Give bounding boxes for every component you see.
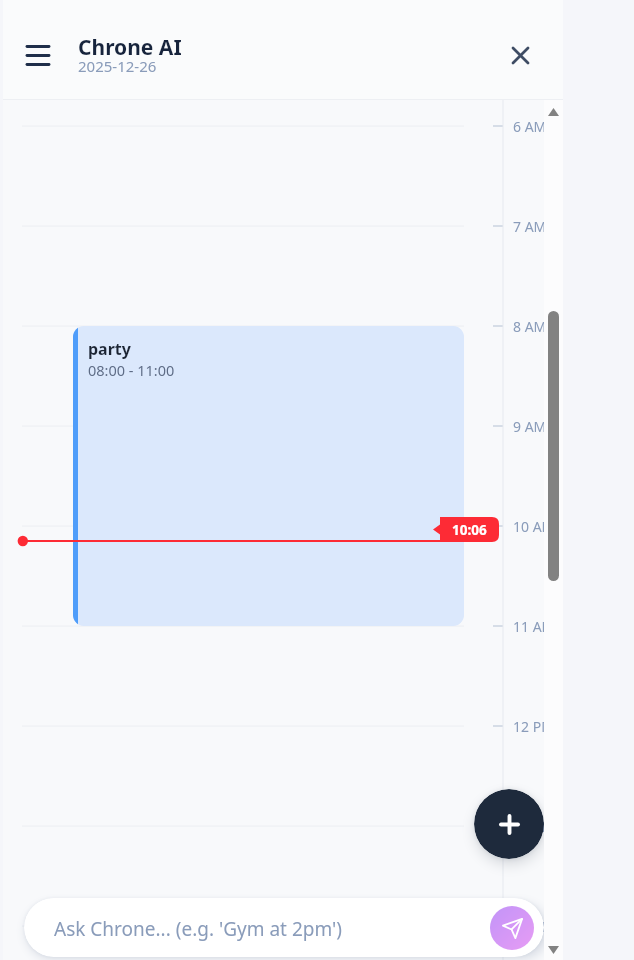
button[interactable]: Send (490, 906, 534, 950)
staticText: 10 AM (513, 517, 555, 536)
staticText: 9 AM (513, 417, 547, 436)
staticText: Chrone AI (78, 33, 182, 62)
staticText: 2025-12-26 (78, 56, 157, 76)
staticText: 2 PM (513, 917, 546, 936)
button[interactable]: Ask Chrone... (e.g. 'Gym at 2pm') (24, 898, 544, 957)
staticText: 10:06 (452, 521, 487, 539)
staticText: 7 AM (513, 217, 547, 236)
staticText: party (88, 338, 131, 360)
button[interactable]: Close (500, 35, 540, 75)
staticText: 6 AM (513, 117, 547, 136)
staticText: 1 PM (513, 817, 546, 836)
staticText: 8 AM (513, 317, 547, 336)
staticText: 12 PM (513, 717, 554, 736)
staticText: Ask Chrone... (e.g. 'Gym at 2pm') (54, 916, 490, 942)
button[interactable]: Add event (474, 789, 544, 859)
button[interactable]: Menu (19, 37, 57, 73)
button[interactable]: party (73, 326, 464, 626)
staticText: 11 AM (513, 617, 555, 636)
staticText: 08:00 - 11:00 (88, 360, 175, 380)
